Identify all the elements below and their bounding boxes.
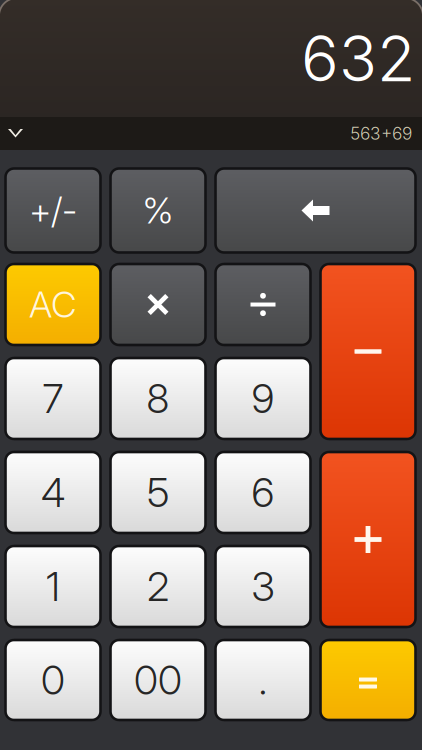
button[interactable]: 8 — [110, 358, 205, 439]
staticText: 8 — [146, 374, 169, 423]
staticText: 3 — [251, 562, 274, 611]
button[interactable]: Multiply — [110, 264, 205, 345]
button[interactable]: 6 — [215, 452, 310, 533]
staticText: AC — [29, 283, 77, 326]
button[interactable]: 9 — [215, 358, 310, 439]
button[interactable]: AC — [5, 264, 100, 345]
staticText: 0 — [41, 656, 65, 704]
staticText: . — [258, 656, 267, 704]
staticText: 9 — [251, 374, 274, 423]
staticText: 1 — [46, 562, 60, 611]
button[interactable]: Divide — [215, 264, 310, 345]
button[interactable]: 7 — [5, 358, 100, 439]
staticText: 2 — [147, 562, 169, 611]
staticText: 00 — [134, 656, 182, 704]
staticText: +/- — [29, 189, 77, 232]
staticText: 563+69 — [350, 123, 412, 144]
button[interactable]: Show history — [0, 117, 31, 150]
button[interactable]: 1 — [5, 546, 100, 627]
staticText: 7 — [42, 374, 63, 423]
button[interactable]: 0 — [5, 640, 100, 720]
button[interactable]: +/- — [5, 168, 100, 252]
button[interactable]: Backspace — [215, 168, 415, 252]
staticText: 4 — [41, 468, 65, 517]
button[interactable]: 00 — [110, 640, 205, 720]
button[interactable]: 2 — [110, 546, 205, 627]
staticText: % — [142, 189, 173, 232]
button[interactable]: Equals — [320, 640, 415, 720]
staticText: 632 — [301, 21, 415, 96]
staticText: 5 — [147, 468, 169, 517]
button[interactable]: Plus — [320, 452, 415, 627]
button[interactable]: 4 — [5, 452, 100, 533]
staticText: 6 — [251, 468, 274, 517]
button[interactable]: 5 — [110, 452, 205, 533]
button[interactable]: . — [215, 640, 310, 720]
button[interactable]: % — [110, 168, 205, 252]
button[interactable]: Minus — [320, 264, 415, 439]
button[interactable]: 3 — [215, 546, 310, 627]
